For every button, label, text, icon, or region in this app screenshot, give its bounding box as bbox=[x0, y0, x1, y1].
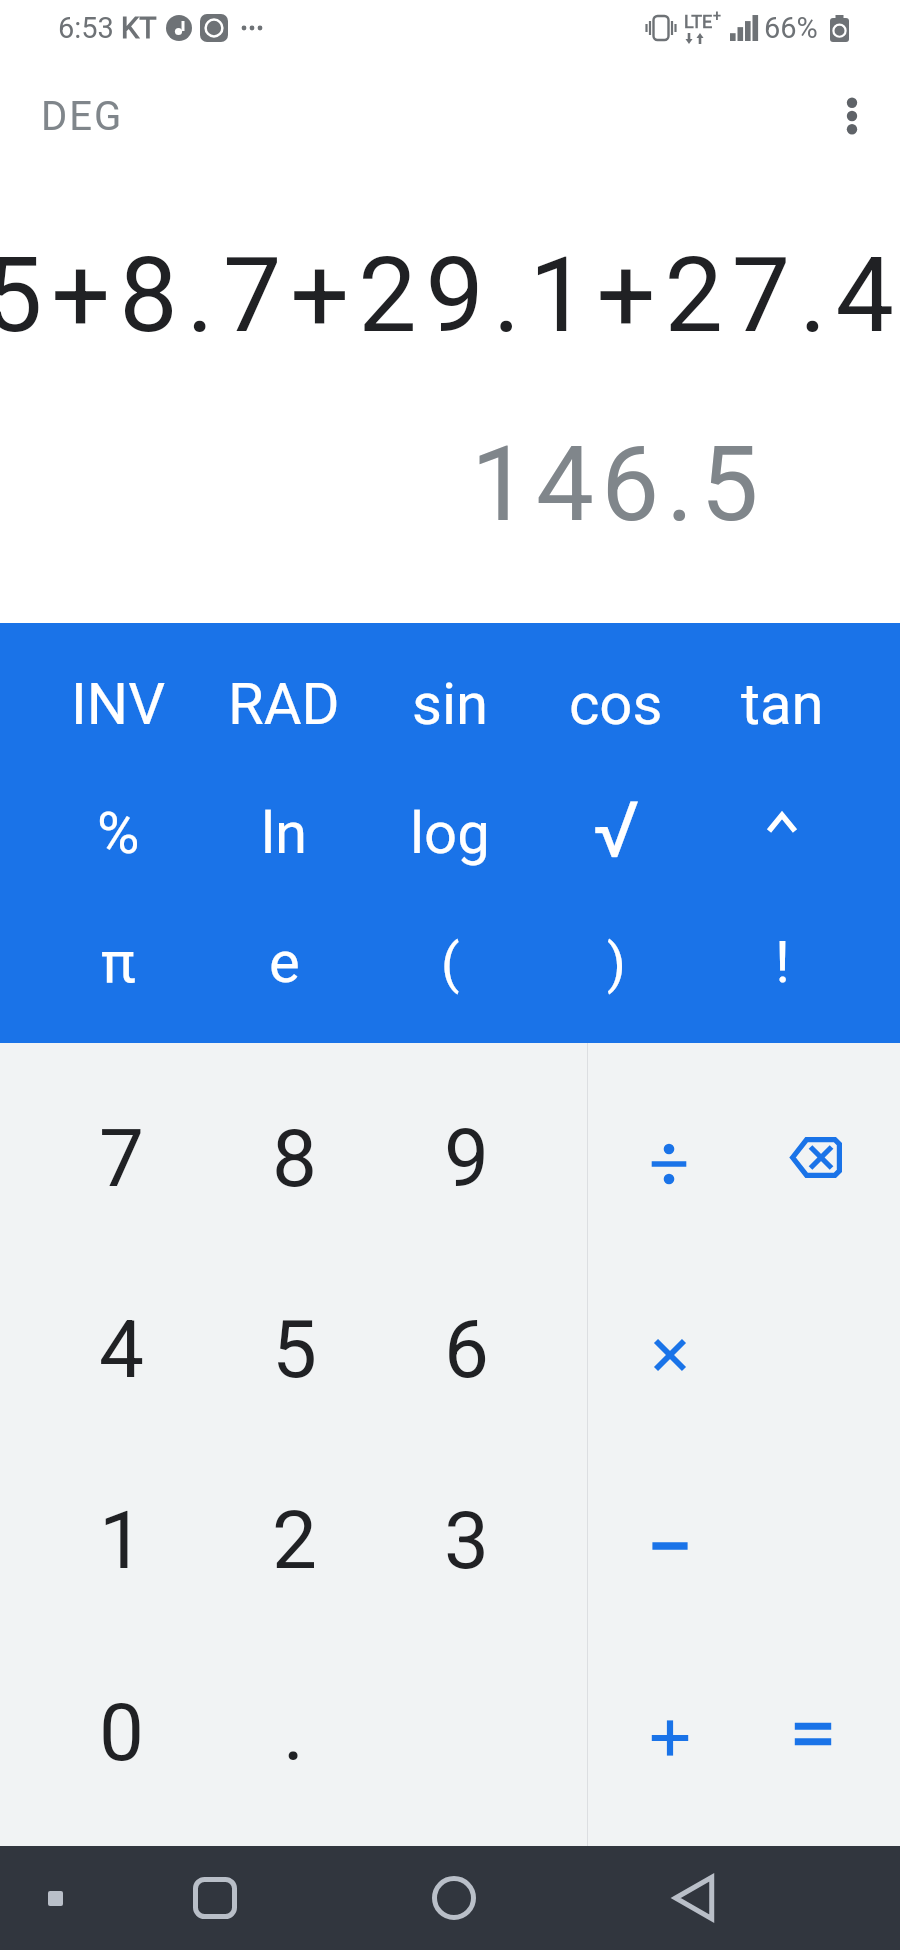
button[interactable]: 2 bbox=[208, 1445, 380, 1637]
button[interactable]: ) bbox=[533, 897, 699, 1026]
button[interactable]: ( bbox=[367, 897, 533, 1026]
button[interactable]: Backspace bbox=[744, 1068, 888, 1259]
staticText: 2 bbox=[272, 1494, 317, 1588]
button[interactable]: e bbox=[201, 897, 367, 1026]
staticText: LTE bbox=[684, 11, 713, 32]
staticText: 0 bbox=[99, 1686, 144, 1780]
staticText: log bbox=[410, 799, 490, 867]
staticText: INV bbox=[71, 670, 166, 738]
staticText: ! bbox=[775, 928, 790, 996]
staticText: e bbox=[269, 928, 300, 996]
staticText: 5 bbox=[272, 1303, 317, 1397]
button[interactable]: Plus bbox=[600, 1642, 744, 1834]
button[interactable]: 4 bbox=[35, 1254, 208, 1445]
staticText: 1 bbox=[99, 1494, 144, 1588]
button[interactable] bbox=[699, 768, 865, 897]
staticText: π bbox=[101, 928, 136, 996]
staticText: ) bbox=[607, 932, 626, 995]
staticText: sin bbox=[412, 670, 489, 738]
staticText: ln bbox=[261, 799, 308, 867]
button[interactable]: sin bbox=[367, 639, 533, 768]
staticText: ( bbox=[441, 932, 460, 995]
button[interactable]: 6 bbox=[380, 1254, 552, 1445]
staticText: DEG bbox=[41, 93, 124, 140]
button[interactable]: % bbox=[35, 768, 201, 897]
staticText: 7 bbox=[99, 1112, 144, 1206]
staticText: 66% bbox=[764, 11, 818, 45]
button[interactable]: 7 bbox=[35, 1063, 208, 1254]
staticText: . bbox=[283, 1686, 305, 1780]
button[interactable]: 5 bbox=[208, 1254, 380, 1445]
button[interactable]: 8 bbox=[208, 1063, 380, 1254]
button[interactable]: Recents bbox=[183, 1866, 247, 1930]
button[interactable]: tan bbox=[699, 639, 865, 768]
staticText: 9 bbox=[444, 1112, 489, 1206]
button[interactable]: log bbox=[367, 768, 533, 897]
staticText: 6 bbox=[444, 1303, 489, 1397]
button[interactable]: π bbox=[35, 897, 201, 1026]
button[interactable]: Equals bbox=[744, 1642, 888, 1834]
staticText: √ bbox=[593, 785, 640, 876]
button[interactable]: Back bbox=[663, 1866, 727, 1930]
button[interactable]: Minus bbox=[600, 1450, 744, 1642]
button[interactable]: Multiply bbox=[600, 1259, 744, 1450]
button[interactable]: RAD bbox=[201, 639, 367, 768]
button[interactable]: cos bbox=[533, 639, 699, 768]
staticText: RAD bbox=[228, 670, 340, 738]
staticText: tan bbox=[741, 670, 824, 738]
staticText: 146.5 bbox=[471, 424, 766, 545]
staticText: 3 bbox=[444, 1494, 489, 1588]
button[interactable]: √ bbox=[533, 768, 699, 897]
staticText: 4 bbox=[99, 1303, 144, 1397]
staticText: % bbox=[97, 799, 140, 867]
staticText: + bbox=[713, 8, 714, 24]
button[interactable]: ! bbox=[699, 897, 865, 1026]
staticText: 5+8.7+29.1+27.4 bbox=[0, 235, 900, 357]
button[interactable]: Home bbox=[422, 1866, 486, 1930]
button[interactable]: DEG bbox=[13, 77, 152, 156]
button[interactable]: Divide bbox=[600, 1068, 744, 1259]
button[interactable]: More options bbox=[816, 80, 888, 152]
button[interactable]: 3 bbox=[380, 1445, 552, 1637]
button[interactable]: . bbox=[208, 1637, 380, 1829]
button[interactable]: INV bbox=[35, 639, 201, 768]
button[interactable]: 0 bbox=[35, 1637, 208, 1829]
button[interactable]: 9 bbox=[380, 1063, 552, 1254]
staticText: 8 bbox=[272, 1112, 317, 1206]
button[interactable]: ln bbox=[201, 768, 367, 897]
button[interactable]: 1 bbox=[35, 1445, 208, 1637]
staticText: cos bbox=[569, 670, 663, 738]
staticText: 6:53 bbox=[58, 11, 114, 45]
staticText: KT bbox=[121, 11, 157, 45]
